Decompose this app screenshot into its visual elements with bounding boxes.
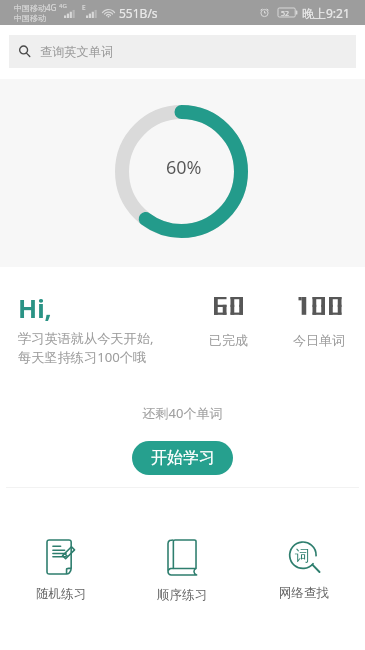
other: 顺序练习 (168, 540, 196, 575)
staticText: 4G (59, 2, 67, 10)
staticText: 中国移动4G (14, 2, 57, 13)
button[interactable]: 查询英文单词 (9, 35, 356, 68)
staticText: Hi, (18, 291, 52, 325)
staticText: 52 (281, 9, 290, 19)
staticText: 顺序练习 (157, 587, 207, 603)
staticText: 今日单词 (293, 332, 345, 348)
staticText: 学习英语就从今天开始, 每天坚持练习100个哦 (18, 329, 154, 366)
button[interactable]: 开始学习 (132, 441, 233, 475)
staticText: 晚上9:21 (302, 5, 350, 21)
other: 网络查找 (289, 540, 320, 573)
staticText: 中国移动 (14, 13, 46, 23)
staticText: 随机练习 (36, 586, 86, 602)
staticText: 查询英文单词 (40, 44, 114, 59)
staticText: 551B/s (119, 5, 158, 21)
staticText: 60% (166, 155, 202, 180)
staticText: 已完成 (209, 332, 248, 348)
staticText: 网络查找 (279, 585, 329, 601)
button[interactable]: 网络查找 (243, 536, 365, 605)
staticText: 开始学习 (151, 448, 215, 468)
staticText: 还剩40个单词 (0, 404, 365, 422)
staticText: E (82, 3, 86, 12)
button[interactable]: 顺序练习 (121, 536, 243, 607)
other: 随机练习 (47, 540, 74, 574)
button[interactable]: 随机练习 (0, 536, 121, 606)
staticText: 词 (295, 547, 310, 566)
